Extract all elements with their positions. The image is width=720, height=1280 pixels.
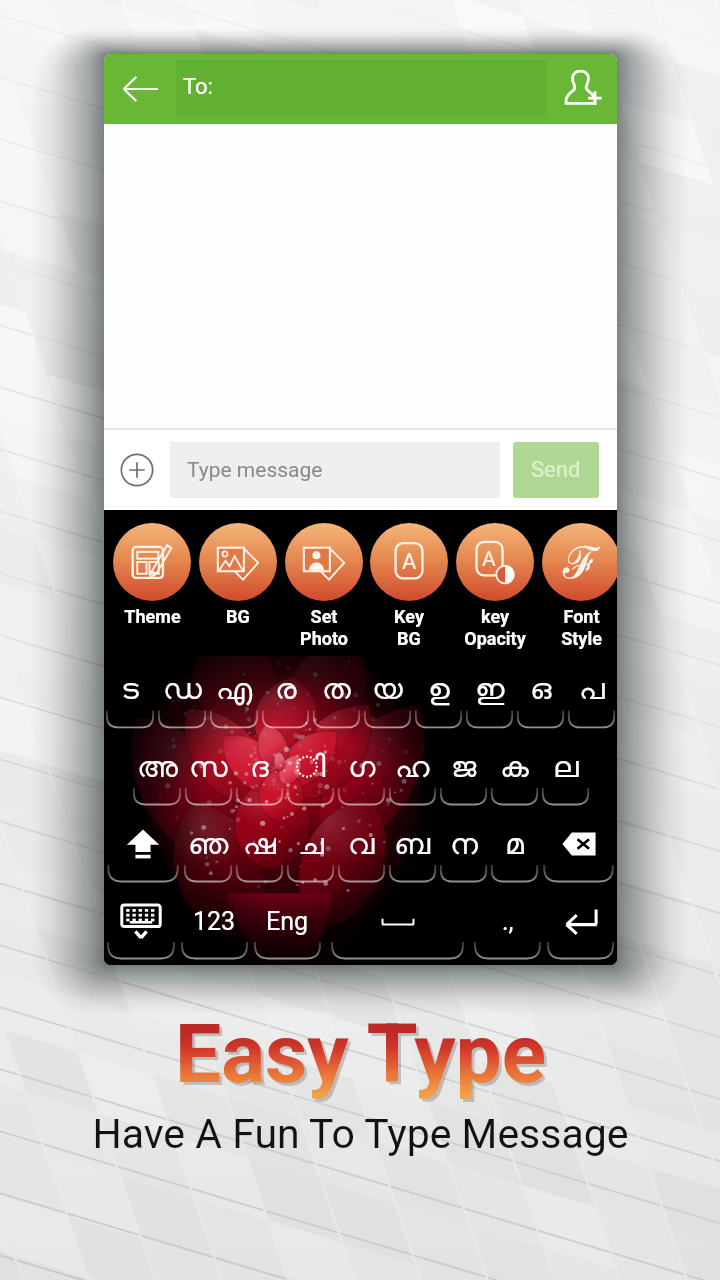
staticText: Easy Type xyxy=(178,1009,549,1105)
button[interactable]: Type message xyxy=(170,442,500,498)
button[interactable]: എ xyxy=(208,656,260,734)
staticText: ജ xyxy=(451,753,477,783)
button[interactable]: ഡ xyxy=(156,656,208,734)
button[interactable]: യ xyxy=(362,656,413,734)
button[interactable]: ഞ xyxy=(182,811,234,888)
button[interactable]: Send xyxy=(513,442,599,498)
staticText: ച xyxy=(298,830,324,860)
button[interactable]: BG xyxy=(193,606,283,656)
button[interactable]: പ xyxy=(566,656,617,734)
button[interactable]: space xyxy=(324,888,471,965)
staticText: ബ xyxy=(394,830,431,860)
staticText: പ xyxy=(579,675,605,705)
staticText: ത xyxy=(322,675,351,705)
button[interactable]: ബ xyxy=(387,811,438,888)
staticText: ഷ xyxy=(243,830,276,860)
button[interactable]: enter xyxy=(544,888,617,965)
staticText: യ xyxy=(372,675,403,705)
staticText: ഞ xyxy=(188,830,229,860)
button[interactable]: സ xyxy=(183,734,234,811)
staticText: To: xyxy=(183,74,213,100)
staticText: Theme xyxy=(124,606,181,627)
staticText: ി xyxy=(295,753,326,783)
staticText: സ xyxy=(189,753,228,783)
staticText: ട xyxy=(121,675,139,705)
button[interactable]: ി xyxy=(285,734,336,811)
staticText: A xyxy=(402,549,417,575)
staticText: ℱ xyxy=(563,531,600,591)
other: enter xyxy=(563,903,599,939)
button[interactable]: Font Style xyxy=(536,606,617,656)
staticText: Easy Type xyxy=(175,1006,546,1102)
staticText: Font Style xyxy=(561,606,602,650)
staticText: ഇ xyxy=(475,675,505,705)
button[interactable]: ഒ xyxy=(515,656,566,734)
staticText: Send xyxy=(531,457,581,483)
staticText: Key BG xyxy=(394,606,424,650)
button[interactable]: Attach xyxy=(104,430,170,510)
staticText: ദ xyxy=(250,753,269,783)
button[interactable]: ന xyxy=(438,811,489,888)
staticText: Set Photo xyxy=(300,606,348,650)
staticText: ഗ xyxy=(348,753,376,783)
staticText: ഡ xyxy=(163,675,202,705)
staticText: ഉ xyxy=(428,675,450,705)
staticText: ഹ xyxy=(395,753,430,783)
staticText: അ xyxy=(137,753,178,783)
other: shift xyxy=(125,826,161,862)
button[interactable]: Theme xyxy=(107,606,197,656)
staticText: ന xyxy=(450,830,478,860)
staticText: ഒ xyxy=(530,675,552,705)
staticText: 123 xyxy=(193,907,236,936)
staticText: മ xyxy=(505,830,524,860)
button[interactable]: മ xyxy=(489,811,540,888)
other: backspace xyxy=(561,826,597,862)
button[interactable]: ദ xyxy=(234,734,285,811)
staticText: key Opacity xyxy=(464,606,526,650)
button[interactable]: ര xyxy=(260,656,311,734)
button[interactable]: Key BG xyxy=(364,606,454,656)
button[interactable]: Add contact xyxy=(547,54,617,124)
button[interactable]: shift xyxy=(104,811,182,888)
button[interactable]: ഉ xyxy=(413,656,464,734)
button[interactable]: ച xyxy=(285,811,336,888)
button[interactable]: ഹ xyxy=(387,734,438,811)
other: kb xyxy=(121,901,161,941)
button[interactable]: 123 xyxy=(178,888,251,965)
button[interactable]: To: xyxy=(176,60,547,117)
button[interactable]: kb xyxy=(104,888,178,965)
button[interactable]: Back xyxy=(104,54,176,124)
button[interactable]: ത xyxy=(311,656,362,734)
button[interactable]: അ xyxy=(131,734,183,811)
button[interactable]: ഇ xyxy=(464,656,515,734)
button[interactable]: ഗ xyxy=(336,734,387,811)
staticText: Eng xyxy=(266,907,309,936)
button[interactable]: ക xyxy=(489,734,540,811)
button[interactable]: Eng xyxy=(251,888,324,965)
staticText: Have A Fun To Type Message xyxy=(92,1110,629,1158)
other: space xyxy=(380,903,416,939)
staticText: ര xyxy=(275,675,297,705)
staticText: A xyxy=(482,547,496,572)
button[interactable]: ല xyxy=(540,734,591,811)
staticText: Type message xyxy=(187,458,323,483)
button[interactable]: വ xyxy=(336,811,387,888)
button[interactable]: key Opacity xyxy=(450,606,540,656)
staticText: ക xyxy=(500,753,529,783)
button[interactable]: ട xyxy=(104,656,156,734)
staticText: വ xyxy=(348,830,375,860)
button[interactable]: ഷ xyxy=(234,811,285,888)
staticText: BG xyxy=(226,606,250,627)
button[interactable]: ജ xyxy=(438,734,489,811)
staticText: എ xyxy=(216,675,253,705)
button[interactable]: Set Photo xyxy=(279,606,369,656)
button[interactable]: backspace xyxy=(540,811,617,888)
button[interactable]: ., xyxy=(471,888,544,965)
staticText: ല xyxy=(553,753,579,783)
staticText: ., xyxy=(502,907,514,936)
